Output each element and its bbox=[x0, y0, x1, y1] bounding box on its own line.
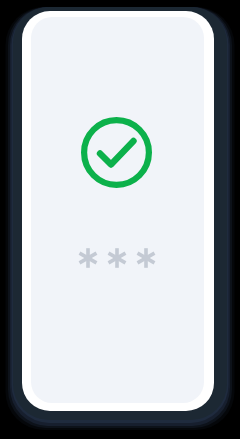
button[interactable]: Payment confirmed on phone bbox=[0, 0, 240, 439]
